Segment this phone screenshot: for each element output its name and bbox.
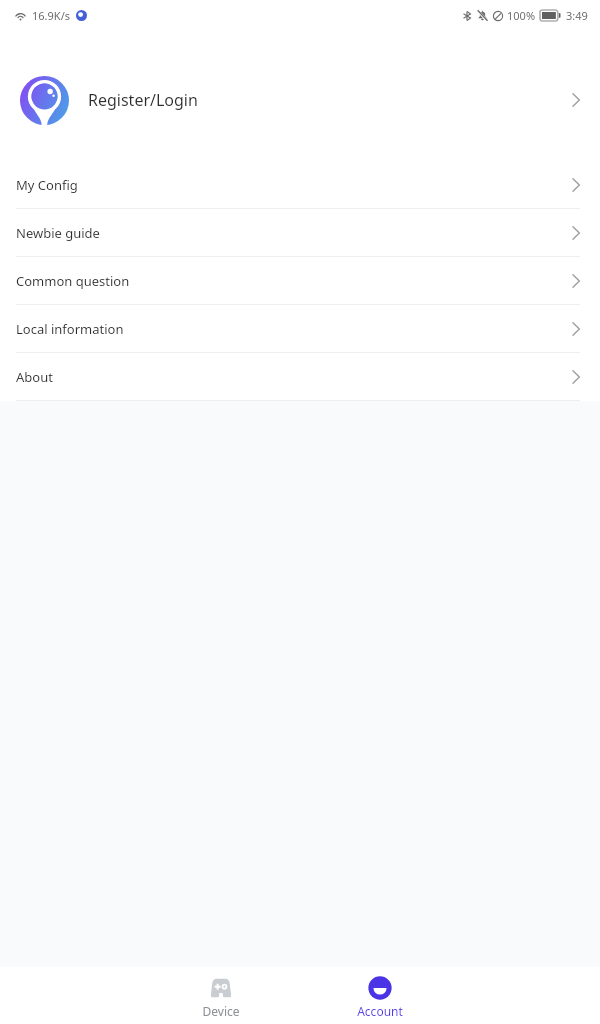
staticText: 16.9K/s <box>32 8 70 23</box>
staticText: 100% <box>507 8 536 23</box>
button[interactable]: About <box>0 353 600 401</box>
staticText: Common question <box>16 272 130 290</box>
button[interactable]: My Config <box>0 161 600 209</box>
staticText: Device <box>202 1003 240 1019</box>
button[interactable]: Device <box>141 967 300 1024</box>
staticText: My Config <box>16 176 78 194</box>
button[interactable]: Local information <box>0 305 600 353</box>
staticText: Register/Login <box>88 89 198 111</box>
staticText: 3:49 <box>566 8 588 23</box>
button[interactable]: Common question <box>0 257 600 305</box>
button[interactable]: Register or Login <box>0 30 600 161</box>
staticText: Account <box>357 1003 403 1019</box>
staticText: Local information <box>16 320 124 338</box>
button[interactable]: Newbie guide <box>0 209 600 257</box>
button[interactable]: Account <box>300 967 459 1024</box>
staticText: About <box>16 368 53 386</box>
staticText: Newbie guide <box>16 224 100 242</box>
